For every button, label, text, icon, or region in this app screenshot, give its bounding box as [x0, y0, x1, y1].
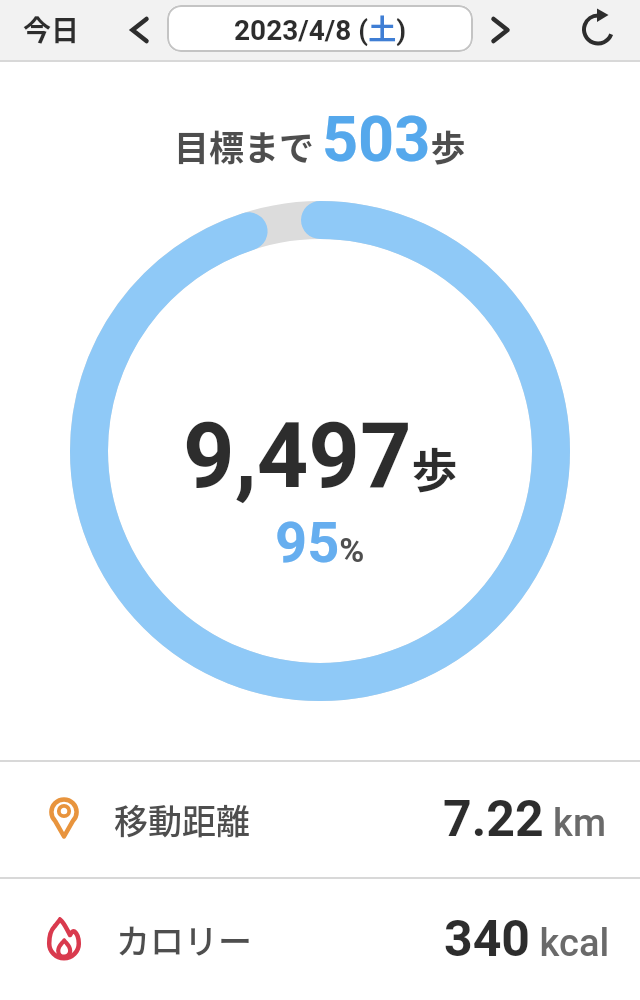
- staticText: 7.22 km: [443, 790, 606, 849]
- button[interactable]: カロリー: [0, 879, 640, 1000]
- staticText: 9,497歩: [183, 404, 458, 509]
- staticText: 95%: [275, 510, 365, 574]
- staticText: 2023/4/8 (土): [234, 8, 407, 49]
- staticText: 今日: [23, 9, 80, 50]
- button[interactable]: 移動距離: [0, 762, 640, 877]
- button[interactable]: 今日: [18, 5, 84, 53]
- button[interactable]: [570, 4, 618, 52]
- button[interactable]: [478, 8, 522, 52]
- staticText: 340 kcal: [444, 910, 610, 969]
- staticText: カロリー: [116, 915, 252, 964]
- staticText: 移動距離: [114, 795, 250, 844]
- button[interactable]: [118, 8, 162, 52]
- button[interactable]: 2023/4/8 (土): [167, 5, 473, 52]
- staticText: 目標まで 503歩: [174, 103, 466, 177]
